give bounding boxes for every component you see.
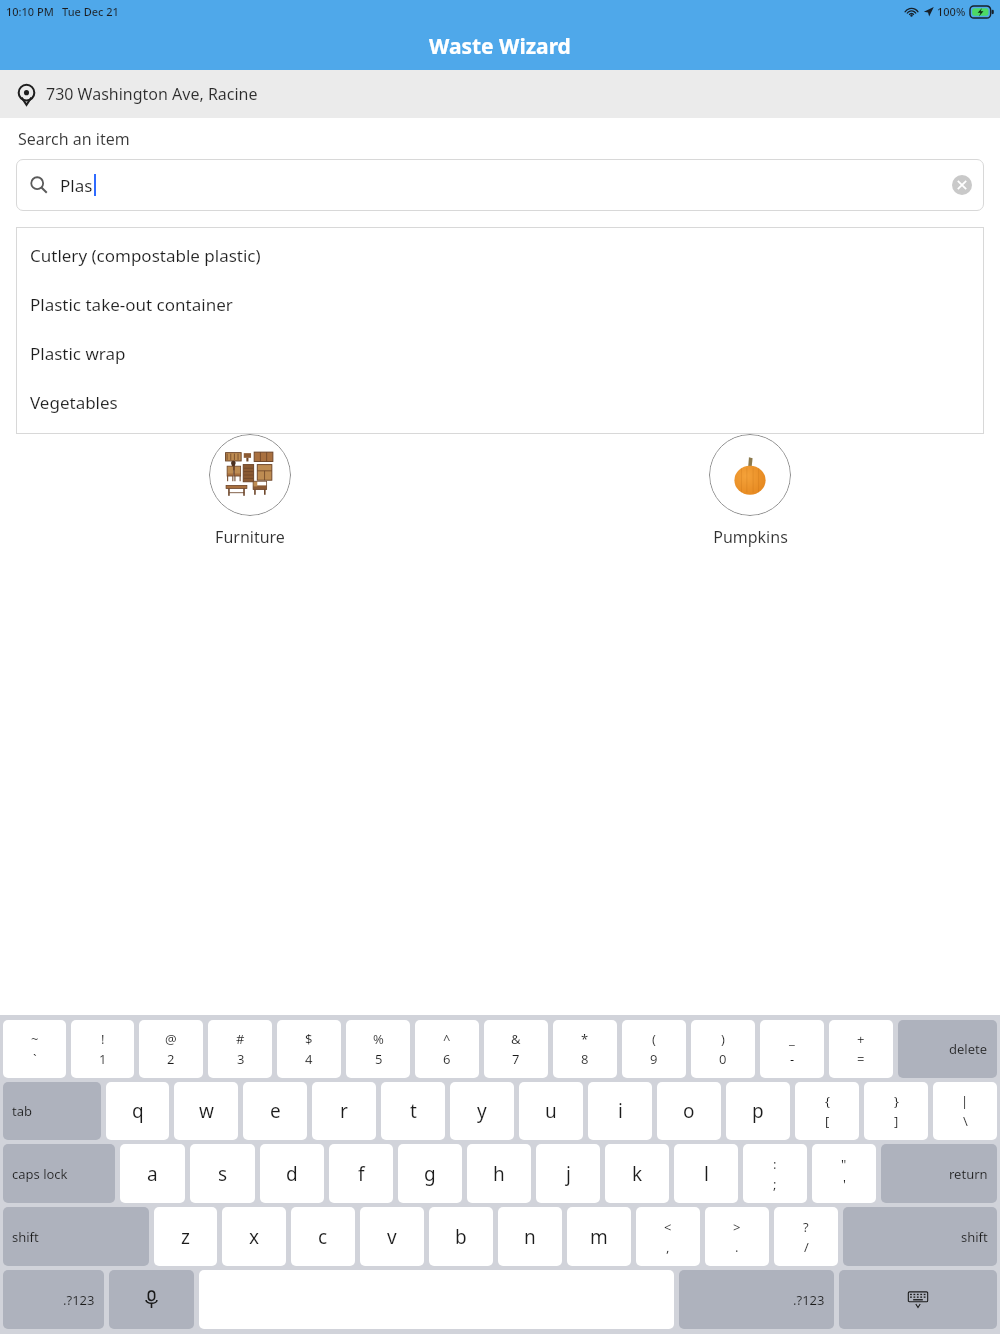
staticText: Waste Wizard bbox=[429, 32, 571, 61]
button[interactable]: s bbox=[190, 1144, 255, 1203]
button[interactable]: q bbox=[106, 1082, 169, 1140]
button[interactable]: c bbox=[291, 1207, 355, 1266]
button[interactable]: a bbox=[120, 1144, 185, 1203]
button[interactable]: Furniture bbox=[0, 434, 500, 548]
button[interactable]: ~ bbox=[3, 1020, 66, 1078]
staticText: h bbox=[493, 1161, 505, 1187]
staticText: 5 bbox=[375, 1050, 383, 1068]
staticText: j bbox=[566, 1161, 571, 1187]
button[interactable]: return bbox=[881, 1144, 997, 1203]
staticText: s bbox=[218, 1161, 228, 1187]
button[interactable]: r bbox=[312, 1082, 376, 1140]
staticText: ) bbox=[721, 1030, 725, 1048]
button[interactable]: ^ bbox=[415, 1020, 479, 1078]
button[interactable]: v bbox=[360, 1207, 424, 1266]
button[interactable]: h bbox=[467, 1144, 531, 1203]
button[interactable]: & bbox=[484, 1020, 548, 1078]
staticText: n bbox=[524, 1224, 536, 1250]
button[interactable]: ( bbox=[622, 1020, 686, 1078]
button[interactable]: ) bbox=[691, 1020, 755, 1078]
button[interactable]: Plastic take-out container bbox=[16, 280, 984, 329]
button[interactable]: .?123 bbox=[3, 1270, 104, 1329]
button[interactable]: # bbox=[208, 1020, 272, 1078]
button[interactable]: m bbox=[567, 1207, 631, 1266]
button[interactable]: > bbox=[705, 1207, 769, 1266]
staticText: Pumpkins bbox=[713, 526, 788, 548]
button[interactable]: l bbox=[674, 1144, 738, 1203]
staticText: 4 bbox=[305, 1050, 313, 1068]
staticText: l bbox=[704, 1161, 709, 1187]
button[interactable]: $ bbox=[277, 1020, 341, 1078]
staticText: 1 bbox=[99, 1050, 107, 1068]
button[interactable]: ! bbox=[71, 1020, 134, 1078]
staticText: ~ bbox=[31, 1030, 39, 1048]
staticText: Vegetables bbox=[30, 391, 118, 414]
staticText: Plastic wrap bbox=[30, 342, 126, 365]
button[interactable]: @ bbox=[139, 1020, 203, 1078]
button[interactable]: } bbox=[864, 1082, 928, 1140]
staticText: " bbox=[841, 1155, 847, 1173]
button[interactable]: k bbox=[605, 1144, 669, 1203]
staticText: .?123 bbox=[793, 1291, 825, 1309]
staticText: Plas bbox=[60, 174, 93, 197]
button[interactable]: * bbox=[553, 1020, 617, 1078]
staticText: t bbox=[410, 1098, 417, 1124]
staticText: 6 bbox=[443, 1050, 451, 1068]
button[interactable]: 730 Washington Ave, Racine bbox=[0, 70, 1000, 118]
button[interactable]: d bbox=[260, 1144, 324, 1203]
button[interactable]: y bbox=[450, 1082, 514, 1140]
button[interactable]: t bbox=[381, 1082, 445, 1140]
button[interactable]: p bbox=[726, 1082, 790, 1140]
button[interactable]: .?123 bbox=[679, 1270, 834, 1329]
button[interactable]: Vegetables bbox=[16, 378, 984, 427]
button[interactable]: Pumpkins bbox=[500, 434, 1000, 548]
button[interactable]: g bbox=[398, 1144, 462, 1203]
button[interactable]: caps lock bbox=[3, 1144, 115, 1203]
button[interactable]: j bbox=[536, 1144, 600, 1203]
button[interactable]: + bbox=[829, 1020, 893, 1078]
staticText: 0 bbox=[719, 1050, 727, 1068]
staticText: 2 bbox=[167, 1050, 175, 1068]
button[interactable]: shift bbox=[843, 1207, 997, 1266]
button[interactable]: Cutlery (compostable plastic) bbox=[16, 231, 984, 280]
button[interactable]: ? bbox=[774, 1207, 838, 1266]
button[interactable]: x bbox=[222, 1207, 286, 1266]
staticText: ; bbox=[773, 1175, 777, 1193]
button[interactable]: Clear search bbox=[952, 175, 972, 195]
staticText: | bbox=[961, 1092, 969, 1110]
button[interactable]: % bbox=[346, 1020, 410, 1078]
staticText: 100% bbox=[937, 4, 966, 19]
staticText: + bbox=[857, 1030, 865, 1048]
staticText: Furniture bbox=[215, 526, 285, 548]
staticText: * bbox=[581, 1030, 589, 1048]
button[interactable]: f bbox=[329, 1144, 393, 1203]
button[interactable]: { bbox=[795, 1082, 859, 1140]
button[interactable]: shift bbox=[3, 1207, 149, 1266]
button[interactable]: : bbox=[743, 1144, 807, 1203]
button[interactable]: Plas bbox=[16, 159, 984, 211]
button[interactable]: Television bbox=[0, 300, 500, 414]
staticText: 9 bbox=[650, 1050, 658, 1068]
button[interactable]: Plastic wrap bbox=[16, 329, 984, 378]
button[interactable]: Hide keyboard bbox=[839, 1270, 997, 1329]
button[interactable]: n bbox=[498, 1207, 562, 1266]
button[interactable]: Dictate bbox=[109, 1270, 194, 1329]
button[interactable]: i bbox=[588, 1082, 652, 1140]
button[interactable]: | bbox=[933, 1082, 997, 1140]
button[interactable]: b bbox=[429, 1207, 493, 1266]
button[interactable]: u bbox=[519, 1082, 583, 1140]
button[interactable]: delete bbox=[898, 1020, 997, 1078]
button[interactable]: w bbox=[174, 1082, 238, 1140]
button[interactable]: tab bbox=[3, 1082, 101, 1140]
button[interactable]: " bbox=[812, 1144, 876, 1203]
button[interactable]: _ bbox=[760, 1020, 824, 1078]
button[interactable]: e bbox=[243, 1082, 307, 1140]
button[interactable]: z bbox=[154, 1207, 217, 1266]
staticText: < bbox=[664, 1218, 672, 1236]
staticText: e bbox=[270, 1098, 281, 1124]
button[interactable]: < bbox=[636, 1207, 700, 1266]
button[interactable]: o bbox=[657, 1082, 721, 1140]
staticText: ^ bbox=[443, 1030, 451, 1048]
